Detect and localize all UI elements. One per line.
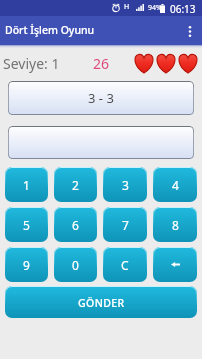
staticText: GÖNDER: [78, 296, 125, 310]
staticText: 06:13: [170, 2, 196, 16]
staticText: 3: [122, 177, 129, 193]
button[interactable]: 3: [103, 167, 147, 202]
button[interactable]: 5: [5, 207, 48, 242]
button[interactable]: More options: [178, 19, 202, 43]
button[interactable]: 2: [54, 167, 97, 202]
button[interactable]: 7: [103, 207, 147, 242]
staticText: Dört İşlem Oyunu: [5, 23, 95, 37]
staticText: 8: [172, 217, 179, 233]
button[interactable]: 0: [54, 247, 97, 282]
staticText: H: [124, 2, 130, 12]
staticText: 2: [72, 177, 79, 193]
button[interactable]: 1: [5, 167, 48, 202]
button[interactable]: 3 - 3: [8, 81, 194, 115]
staticText: 9: [23, 257, 30, 273]
staticText: 5: [23, 217, 30, 233]
staticText: 26: [93, 54, 110, 73]
button[interactable]: 9: [5, 247, 48, 282]
button[interactable]: [8, 126, 194, 159]
button[interactable]: C: [103, 247, 147, 282]
button[interactable]: 4: [153, 167, 197, 202]
button[interactable]: GÖNDER: [5, 286, 197, 318]
staticText: C: [121, 257, 129, 273]
button[interactable]: 8: [153, 207, 197, 242]
staticText: 3 - 3: [88, 89, 114, 107]
staticText: 1: [23, 177, 30, 193]
staticText: 0: [72, 257, 79, 273]
staticText: 7: [122, 217, 129, 233]
staticText: 4: [172, 177, 179, 193]
other: Backspace: [171, 262, 180, 267]
staticText: 94%: [148, 3, 162, 13]
button[interactable]: 6: [54, 207, 97, 242]
staticText: Seviye: 1: [3, 54, 60, 73]
staticText: 6: [72, 217, 79, 233]
button[interactable]: Backspace: [153, 247, 197, 282]
